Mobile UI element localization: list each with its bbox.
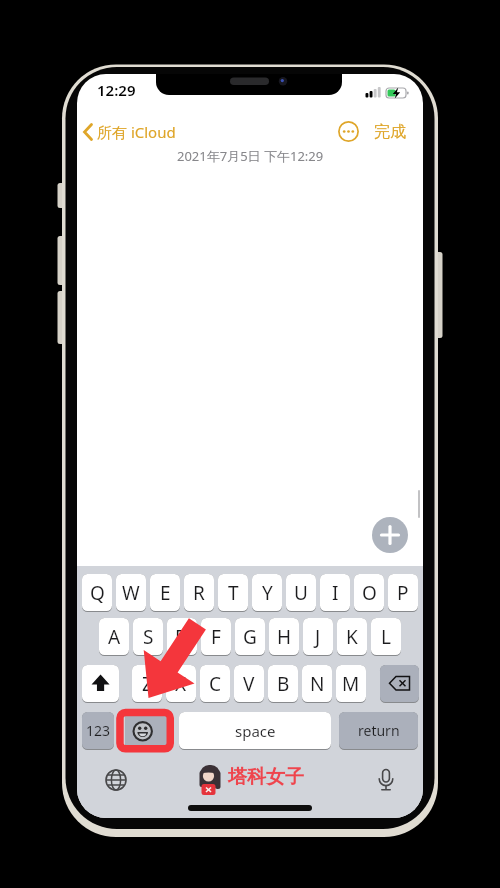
button[interactable]: D (167, 618, 197, 656)
staticText: Z (142, 671, 153, 697)
button[interactable]: S (133, 618, 163, 656)
staticText: O (362, 580, 377, 606)
button[interactable]: U (286, 574, 316, 612)
staticText: H (277, 624, 292, 650)
staticText: T (228, 580, 239, 606)
button[interactable]: 所有 iCloud (81, 118, 251, 146)
staticText: M (342, 671, 360, 697)
button[interactable]: space (179, 712, 331, 750)
staticText: Q (90, 580, 105, 606)
staticText: N (310, 671, 325, 697)
button[interactable]: N (302, 665, 332, 703)
button[interactable]: R (184, 574, 214, 612)
button[interactable]: V (234, 665, 264, 703)
staticText: K (346, 624, 358, 650)
staticText: 完成 (374, 122, 406, 142)
button[interactable] (380, 665, 419, 703)
staticText: P (397, 580, 409, 606)
button[interactable]: T (218, 574, 248, 612)
button[interactable] (104, 768, 128, 792)
staticText: L (381, 624, 391, 650)
staticText: G (243, 624, 257, 650)
staticText: S (143, 624, 154, 650)
staticText: 塔科女子 (228, 765, 304, 789)
staticText: X (175, 671, 187, 697)
staticText: A (108, 624, 121, 650)
button[interactable]: Z (132, 665, 162, 703)
staticText: J (315, 624, 321, 650)
button[interactable]: F (201, 618, 231, 656)
staticText: F (211, 624, 221, 650)
button[interactable]: Y (252, 574, 282, 612)
staticText: 12:29 (97, 80, 136, 100)
button[interactable] (338, 121, 359, 142)
button[interactable]: C (200, 665, 230, 703)
staticText: space (235, 721, 276, 741)
staticText: 123 (86, 721, 111, 740)
button[interactable]: A (99, 618, 129, 656)
button[interactable]: O (354, 574, 384, 612)
button[interactable]: 完成 (369, 118, 411, 146)
button[interactable]: B (268, 665, 298, 703)
button[interactable] (125, 712, 167, 750)
staticText: R (193, 580, 205, 606)
button[interactable]: 123 (82, 712, 114, 750)
staticText: V (243, 671, 255, 697)
button[interactable]: H (269, 618, 299, 656)
button[interactable]: W (116, 574, 146, 612)
staticText: 所有 iCloud (97, 122, 176, 142)
button[interactable] (82, 665, 119, 703)
button[interactable]: J (303, 618, 333, 656)
staticText: I (332, 580, 339, 606)
button[interactable]: E (150, 574, 180, 612)
button[interactable]: M (336, 665, 366, 703)
button[interactable]: Q (82, 574, 112, 612)
staticText: return (358, 721, 400, 740)
staticText: C (209, 671, 222, 697)
staticText: B (277, 671, 290, 697)
staticText: U (294, 580, 308, 606)
button[interactable]: K (337, 618, 367, 656)
staticText: W (122, 580, 140, 606)
button[interactable]: G (235, 618, 265, 656)
button[interactable]: I (320, 574, 350, 612)
staticText: E (160, 580, 171, 606)
button[interactable] (374, 768, 398, 792)
staticText: 2021年7月5日 下午12:29 (177, 147, 324, 165)
button[interactable]: X (166, 665, 196, 703)
staticText: Y (262, 580, 273, 606)
button[interactable]: P (388, 574, 418, 612)
button[interactable]: L (371, 618, 401, 656)
button[interactable]: return (339, 712, 418, 750)
staticText: D (175, 624, 189, 650)
button[interactable] (372, 517, 408, 553)
